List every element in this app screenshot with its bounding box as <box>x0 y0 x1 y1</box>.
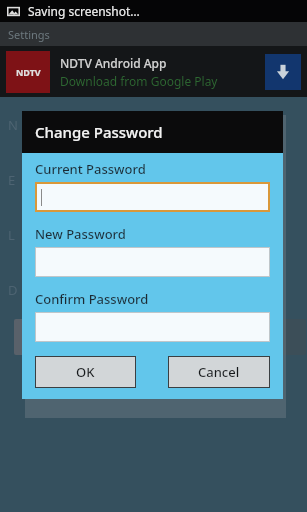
button[interactable] <box>35 182 270 212</box>
staticText: L <box>8 226 15 244</box>
staticText: New Password <box>35 225 126 243</box>
button[interactable]: E <box>0 152 307 207</box>
button[interactable]: L <box>0 207 307 262</box>
button[interactable]: D <box>0 262 307 317</box>
button[interactable]: NDTV <box>0 46 307 97</box>
staticText: Download from Google Play <box>60 73 218 89</box>
staticText: OK <box>76 363 95 381</box>
button[interactable] <box>35 247 270 277</box>
staticText: D <box>8 281 18 299</box>
staticText: Current Password <box>35 160 146 178</box>
staticText: Confirm Password <box>35 290 149 308</box>
staticText: Saving screenshot… <box>28 3 140 19</box>
button[interactable]: Password <box>14 319 136 355</box>
button[interactable]: N <box>0 97 307 152</box>
staticText: E <box>8 171 16 189</box>
button[interactable] <box>35 312 270 342</box>
button[interactable] <box>184 319 306 355</box>
staticText: Change Password <box>35 122 163 142</box>
button[interactable]: Download <box>265 54 301 90</box>
button[interactable]: OK <box>35 356 136 388</box>
button[interactable]: Cancel <box>168 356 270 388</box>
staticText: Cancel <box>198 363 240 381</box>
staticText: NDTV Android App <box>60 55 167 71</box>
staticText: N <box>8 116 18 134</box>
staticText: Settings <box>8 27 50 42</box>
staticText: Password <box>48 329 103 345</box>
staticText: NDTV <box>16 66 41 78</box>
